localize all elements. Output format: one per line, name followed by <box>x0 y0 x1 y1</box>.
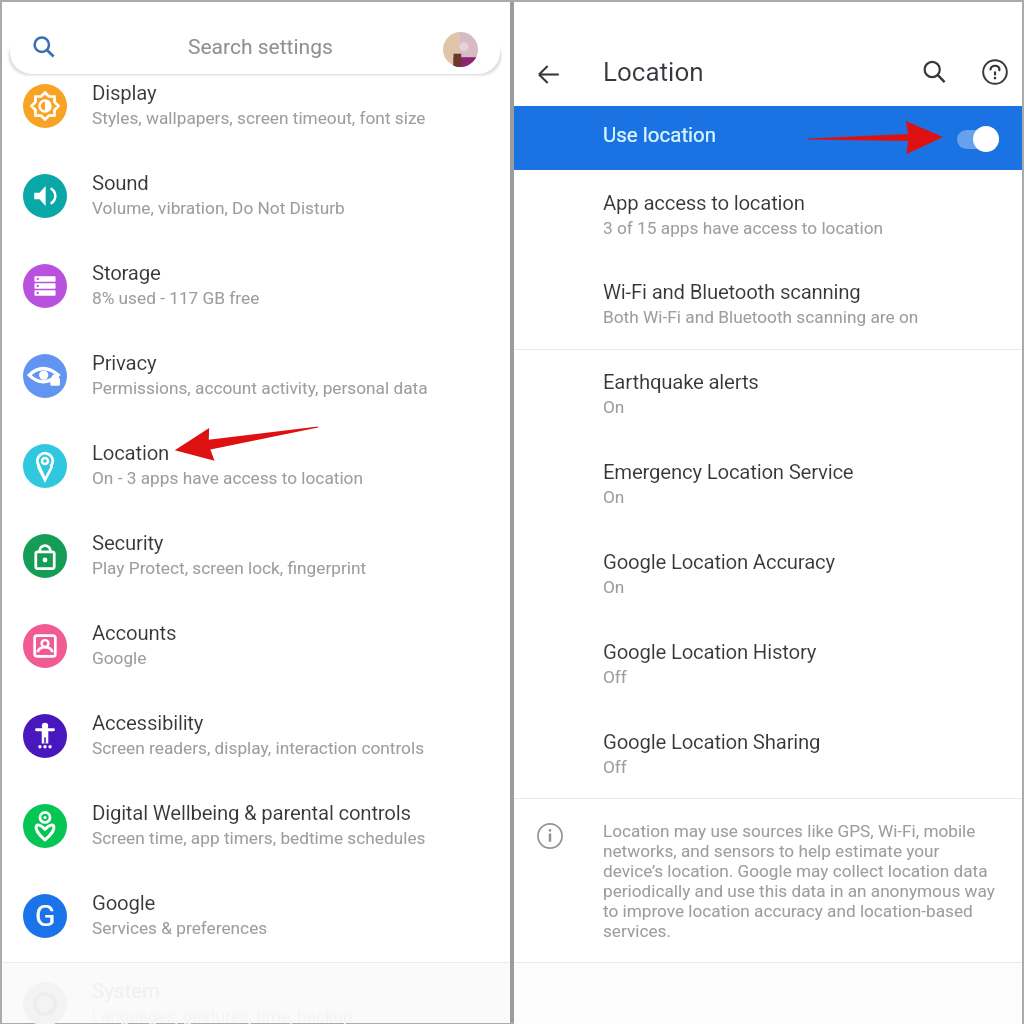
staticText: Screen readers, display, interaction con… <box>92 738 425 758</box>
staticText: System <box>92 979 161 1003</box>
button[interactable]: Back <box>526 52 570 96</box>
button[interactable]: Privacy <box>2 331 510 421</box>
button[interactable]: Storage <box>2 241 510 331</box>
staticText: App access to location <box>603 191 805 215</box>
button[interactable]: Help <box>971 48 1019 96</box>
staticText: Storage <box>92 261 161 285</box>
staticText: Google Location Accuracy <box>603 550 835 574</box>
staticText: Location <box>603 57 704 87</box>
button[interactable]: G <box>2 871 510 961</box>
staticText: Languages, gestures, time, backup <box>92 1006 353 1024</box>
staticText: Google Location History <box>603 640 817 664</box>
button[interactable]: Digital Wellbeing & parental controls <box>2 781 510 871</box>
staticText: On <box>603 397 625 417</box>
staticText: Screen time, app timers, bedtime schedul… <box>92 828 426 848</box>
staticText: Search settings <box>188 35 333 60</box>
staticText: Off <box>603 667 627 687</box>
button[interactable]: Search settings <box>12 0 500 76</box>
staticText: Display <box>92 81 157 105</box>
button[interactable]: Account <box>443 32 478 67</box>
staticText: On <box>603 487 625 507</box>
staticText: Earthquake alerts <box>603 370 759 394</box>
button[interactable]: Display <box>2 61 510 151</box>
staticText: On <box>603 577 625 597</box>
staticText: Permissions, account activity, personal … <box>92 378 428 398</box>
staticText: 8% used - 117 GB free <box>92 288 260 308</box>
staticText: Accounts <box>92 621 177 645</box>
staticText: Security <box>92 531 164 555</box>
button[interactable]: Search <box>910 48 958 96</box>
button[interactable]: App access to location <box>514 168 1022 258</box>
button[interactable]: Accounts <box>2 601 510 691</box>
staticText: Volume, vibration, Do Not Disturb <box>92 198 345 218</box>
staticText: Location <box>92 441 170 465</box>
staticText: Google <box>92 891 156 915</box>
button[interactable]: Emergency Location Service <box>514 437 1022 527</box>
staticText: Sound <box>92 171 149 195</box>
staticText: 3 of 15 apps have access to location <box>603 218 884 238</box>
staticText: Off <box>603 757 627 777</box>
staticText: Services & preferences <box>92 918 268 938</box>
button[interactable]: Sound <box>2 151 510 241</box>
button[interactable]: Security <box>2 511 510 601</box>
button[interactable]: Location <box>2 421 510 511</box>
staticText: Location may use sources like GPS, Wi-Fi… <box>603 821 1003 941</box>
other: Information <box>537 823 563 849</box>
button[interactable]: Google Location History <box>514 617 1022 707</box>
staticText: Google Location Sharing <box>603 730 821 754</box>
staticText: Both Wi-Fi and Bluetooth scanning are on <box>603 307 919 327</box>
staticText: Play Protect, screen lock, fingerprint <box>92 558 367 578</box>
other: Search <box>31 34 55 58</box>
staticText: Google <box>92 648 147 668</box>
staticText: On - 3 apps have access to location <box>92 468 363 488</box>
staticText: Wi-Fi and Bluetooth scanning <box>603 280 861 304</box>
button[interactable]: Use location <box>514 106 1022 170</box>
button[interactable]: Wi-Fi and Bluetooth scanning <box>514 257 1022 347</box>
button[interactable]: Google Location Sharing <box>514 707 1022 797</box>
staticText: Styles, wallpapers, screen timeout, font… <box>92 108 426 128</box>
button[interactable]: Accessibility <box>2 691 510 781</box>
staticText: Privacy <box>92 351 157 375</box>
staticText: Emergency Location Service <box>603 460 854 484</box>
staticText: Use location <box>603 123 717 147</box>
button[interactable]: Google Location Accuracy <box>514 527 1022 617</box>
staticText: Accessibility <box>92 711 204 735</box>
staticText: G <box>35 898 56 933</box>
button[interactable]: Earthquake alerts <box>514 347 1022 437</box>
staticText: Digital Wellbeing & parental controls <box>92 801 411 825</box>
